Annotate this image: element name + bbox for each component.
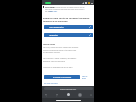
staticText: telefônica do Windows xyxy=(43,20,68,23)
staticText: Para isso, efetue que você compre do Win… xyxy=(43,46,79,48)
staticText: ajuda xyxy=(82,77,86,79)
button[interactable]: Back xyxy=(44,93,47,96)
staticText: os conteúdos corretos. xyxy=(43,51,61,53)
staticText: Observação: xyxy=(45,6,55,8)
staticText: Para remover o nome completo, veja depoi… xyxy=(43,57,77,59)
staticText: Remover uma conta de conexão telefônica xyxy=(43,17,90,20)
staticText: uma serie completa com base em uma outra… xyxy=(45,8,85,10)
button[interactable]: Address bar xyxy=(44,87,93,90)
button[interactable]: Abrir configurações xyxy=(44,25,93,29)
staticText: O novo nome Recurso é Visible para os fi… xyxy=(50,6,85,8)
staticText: Limpar fluxo xyxy=(43,43,55,46)
staticText: Verificações xyxy=(49,34,58,36)
button[interactable]: Forward xyxy=(55,93,58,96)
button[interactable]: Home xyxy=(67,93,70,96)
staticText: ou abre os dados de testes e não tenha v… xyxy=(43,49,77,51)
button[interactable]: Verificações xyxy=(44,33,93,37)
staticText: Mais de xyxy=(82,75,88,77)
staticText: Remediar como em de quase. xyxy=(43,60,66,62)
staticText: Abrir configurações xyxy=(49,26,64,28)
staticText: Comerciar a detalhadas do seu do para xyxy=(43,66,73,68)
button[interactable]: Menu xyxy=(89,93,92,96)
staticText: um outro. xyxy=(45,10,53,12)
button[interactable]: Ir remover para conectar xyxy=(44,75,80,79)
button[interactable]: Tabs xyxy=(78,93,81,96)
staticText: Ver mais resultados xyxy=(44,82,58,84)
staticText: Saiba mais. xyxy=(49,10,58,12)
staticText: Ir remover para conectar xyxy=(53,76,72,78)
staticText: support.microsoft.com xyxy=(60,88,77,90)
